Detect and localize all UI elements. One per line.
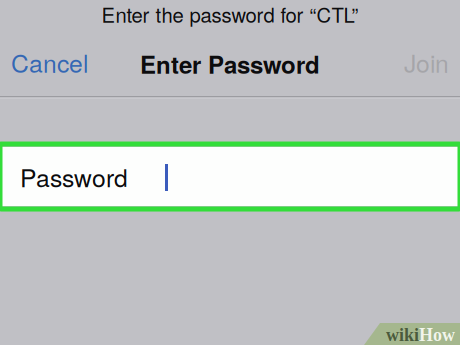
staticText: How — [419, 325, 455, 345]
staticText: Enter Password — [140, 47, 320, 81]
staticText: Password — [20, 159, 128, 194]
button[interactable]: Cancel — [0, 34, 98, 90]
staticText: Enter the password for “CTL” — [101, 0, 358, 28]
button[interactable]: Password — [0, 147, 460, 206]
button[interactable]: Join — [394, 34, 460, 90]
staticText: Join — [404, 44, 449, 80]
staticText: Cancel — [11, 44, 88, 80]
staticText: wiki — [386, 325, 419, 345]
